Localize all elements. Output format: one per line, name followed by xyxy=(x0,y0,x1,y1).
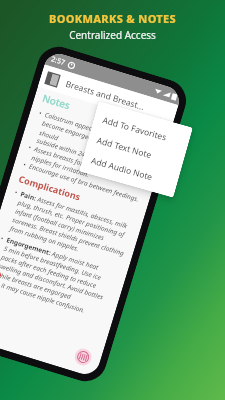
staticText: Add To Favorites xyxy=(101,114,168,144)
staticText: Apply moist heat xyxy=(49,249,100,272)
button[interactable]: Add Audio Note xyxy=(80,147,180,194)
staticText: Assess breasts for infection and assess xyxy=(33,144,142,185)
staticText: Add Audio Note xyxy=(90,154,155,183)
staticText: from rubbing on nipples. xyxy=(9,224,80,253)
button[interactable]: Add to favorites xyxy=(125,116,142,134)
staticText: soreness. Breast shields prevent clothin… xyxy=(11,215,126,258)
staticText: packs after each feeding to reduce xyxy=(0,252,98,290)
staticText: 2:57 xyxy=(50,54,66,68)
staticText: Notes xyxy=(41,91,73,113)
staticText: • xyxy=(14,188,22,198)
staticText: subside within 24 to 36 hours. xyxy=(36,136,122,170)
staticText: Centralized Access xyxy=(69,28,156,42)
button[interactable]: Find xyxy=(145,124,166,140)
staticText: Encourage use of bra between feedings. xyxy=(28,162,140,204)
button[interactable]: Breastfeeding xyxy=(73,346,94,368)
staticText: Add Text Note xyxy=(95,134,154,161)
staticText: FIND xyxy=(147,126,164,139)
staticText: become engorged on day 3 or 4 and should xyxy=(38,118,157,170)
staticText: as it may cause nipple confusion. xyxy=(0,278,87,315)
staticText: Pain: xyxy=(19,189,37,203)
staticText: nipples for irritation. xyxy=(30,153,90,179)
staticText: BOOKMARKS & NOTES xyxy=(49,11,176,26)
staticText: • xyxy=(0,233,8,244)
staticText: Assess for mastitis, abscess, milk xyxy=(35,194,129,231)
button[interactable]: Add Text Note xyxy=(86,127,186,174)
staticText: • xyxy=(22,160,30,170)
staticText: plug, thrush, etc. Proper positioning of xyxy=(17,198,126,239)
staticText: Colostrum appears in ~72 hours; breasts xyxy=(44,110,159,153)
staticText: Breasts and Breast... xyxy=(64,78,146,113)
button[interactable]: Add To Favorites xyxy=(91,107,191,154)
staticText: • xyxy=(38,108,46,119)
staticText: • xyxy=(27,143,36,153)
staticText: 5 min before breastfeeding. Use ice xyxy=(3,244,103,282)
staticText: Engorgement: xyxy=(5,235,52,257)
staticText: infant (football carry) minimizes xyxy=(14,206,106,242)
staticText: Complications xyxy=(17,172,82,202)
staticText: swelling and discomfort. Avoid bottles xyxy=(0,261,105,302)
staticText: while breasts are engorged xyxy=(0,270,73,301)
